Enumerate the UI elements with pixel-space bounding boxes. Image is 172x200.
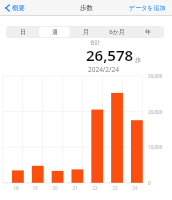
staticText: 20 bbox=[52, 185, 58, 191]
button[interactable]: 年 bbox=[132, 27, 163, 37]
staticText: 21 bbox=[72, 185, 78, 191]
button[interactable]: 日 bbox=[7, 27, 39, 37]
staticText: 30,000 bbox=[148, 73, 163, 79]
button[interactable]: データを追加 bbox=[125, 2, 172, 14]
staticText: 24 bbox=[132, 185, 138, 191]
staticText: 日 bbox=[20, 28, 26, 36]
staticText: 26,578 bbox=[86, 45, 134, 65]
staticText: 概要 bbox=[12, 4, 25, 12]
staticText: 23 bbox=[112, 185, 118, 191]
staticText: 10,000 bbox=[148, 144, 163, 150]
staticText: 2024/2/24 bbox=[88, 65, 119, 74]
button[interactable]: 月 bbox=[70, 27, 101, 37]
staticText: 年 bbox=[145, 28, 151, 36]
staticText: 週 bbox=[52, 28, 58, 36]
staticText: 6か月 bbox=[109, 28, 125, 36]
staticText: 20,000 bbox=[148, 109, 163, 115]
button[interactable]: 概要 bbox=[0, 2, 29, 14]
staticText: 19 bbox=[32, 185, 38, 191]
staticText: 18 bbox=[13, 185, 19, 191]
button[interactable]: 週 bbox=[39, 27, 70, 37]
staticText: 合計 bbox=[90, 39, 100, 45]
staticText: 0 bbox=[148, 180, 151, 186]
staticText: 月 bbox=[83, 28, 89, 36]
staticText: 歩 bbox=[135, 56, 141, 64]
button[interactable]: 6か月 bbox=[101, 27, 132, 37]
staticText: 歩数 bbox=[80, 4, 93, 12]
staticText: 22 bbox=[92, 185, 98, 191]
